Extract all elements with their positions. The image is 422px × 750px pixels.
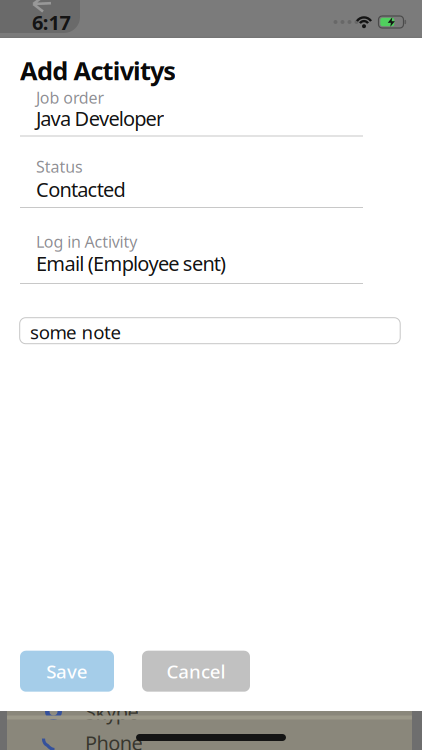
button[interactable]: Log in Activity: [20, 231, 402, 283]
staticText: Cancel: [166, 659, 225, 684]
button[interactable]: Cancel: [142, 651, 250, 692]
staticText: Java Developer: [36, 105, 164, 132]
button[interactable]: some note: [20, 318, 400, 344]
staticText: Status: [36, 156, 83, 177]
button[interactable]: Job order: [20, 87, 402, 139]
staticText: Save: [46, 659, 88, 684]
staticText: some note: [30, 320, 122, 344]
button[interactable]: Status: [20, 156, 402, 208]
staticText: Log in Activity: [36, 231, 137, 252]
staticText: Job order: [36, 87, 104, 108]
staticText: Contacted: [36, 176, 125, 203]
staticText: Add Activitys: [20, 53, 176, 87]
button[interactable]: Save: [20, 651, 114, 692]
staticText: Phone: [85, 729, 142, 750]
staticText: 6:17: [32, 9, 70, 36]
button[interactable]: Back: [32, 0, 52, 12]
staticText: Skype: [85, 698, 138, 725]
staticText: Email (Employee sent): [36, 250, 226, 277]
